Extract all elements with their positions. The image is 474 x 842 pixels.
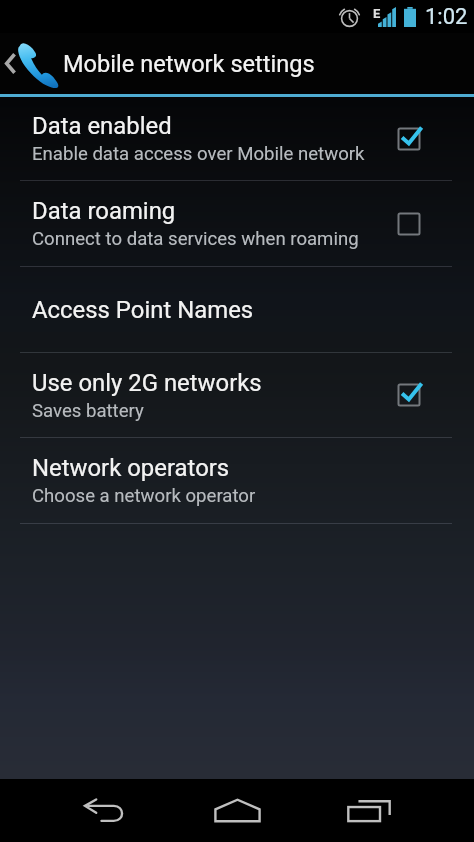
staticText: Connect to data services when roaming <box>32 228 359 250</box>
staticText: Choose a network operator <box>32 485 256 507</box>
button[interactable]: Data roaming <box>0 181 474 266</box>
button[interactable]: Recent apps <box>303 779 435 842</box>
staticText: Access Point Names <box>32 296 254 324</box>
button[interactable]: Back <box>39 779 171 842</box>
staticText: 1:02 <box>425 4 468 30</box>
button[interactable]: Checked <box>388 374 430 416</box>
button[interactable]: Unchecked <box>388 203 430 245</box>
button[interactable]: Data enabled <box>0 97 474 180</box>
staticText: E <box>373 6 381 21</box>
staticText: Network operators <box>32 454 230 482</box>
staticText: Saves battery <box>32 400 144 422</box>
staticText: Enable data access over Mobile network <box>32 143 365 165</box>
button[interactable]: Use only 2G networks <box>0 353 474 437</box>
staticText: Use only 2G networks <box>32 369 262 397</box>
staticText: Data roaming <box>32 197 176 225</box>
staticText: Mobile network settings <box>63 50 315 78</box>
staticText: Data enabled <box>32 112 172 140</box>
button[interactable]: Checked <box>388 118 430 160</box>
button[interactable]: Access Point Names <box>0 267 474 352</box>
button[interactable]: Navigate up <box>0 33 61 94</box>
button[interactable]: Home <box>171 779 303 842</box>
button[interactable]: Network operators <box>0 438 474 523</box>
